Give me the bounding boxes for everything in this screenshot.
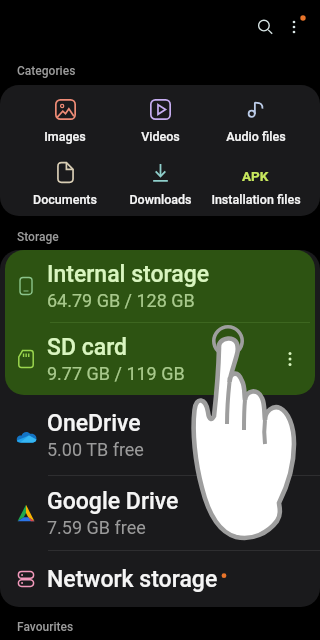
staticText: Images xyxy=(44,129,86,144)
staticText: Google Drive xyxy=(47,488,179,515)
staticText: Documents xyxy=(33,192,97,207)
staticText: APK xyxy=(242,168,269,184)
button[interactable]: More options xyxy=(275,344,305,374)
staticText: Categories xyxy=(17,64,76,78)
button[interactable]: Videos xyxy=(113,99,208,144)
button[interactable]: Search xyxy=(247,9,283,45)
button[interactable]: Documents xyxy=(17,162,113,207)
button[interactable]: APK xyxy=(208,162,303,207)
staticText: 9.77 GB / 119 GB xyxy=(47,363,185,384)
staticText: Videos xyxy=(141,129,180,144)
staticText: Audio files xyxy=(226,129,286,144)
button[interactable]: Downloads xyxy=(113,162,208,207)
staticText: Installation files xyxy=(211,192,301,207)
staticText: 7.59 GB free xyxy=(47,517,146,538)
button[interactable]: OneDrive xyxy=(0,395,320,475)
button[interactable]: SD card xyxy=(5,323,315,395)
button[interactable]: Network storage xyxy=(0,551,320,607)
staticText: Storage xyxy=(17,230,59,244)
staticText: 64.79 GB / 128 GB xyxy=(47,290,195,311)
staticText: Internal storage xyxy=(47,261,210,288)
button[interactable]: Internal storage xyxy=(5,250,315,322)
staticText: OneDrive xyxy=(47,410,141,437)
staticText: Downloads xyxy=(129,192,192,207)
button[interactable]: Images xyxy=(17,99,113,144)
staticText: 5.00 TB free xyxy=(47,439,144,460)
staticText: Network storage xyxy=(47,566,218,593)
button[interactable]: More options xyxy=(276,9,312,45)
button[interactable]: Google Drive xyxy=(0,476,320,550)
staticText: Favourites xyxy=(17,620,74,634)
button[interactable]: Audio files xyxy=(208,99,303,144)
staticText: SD card xyxy=(47,334,128,361)
